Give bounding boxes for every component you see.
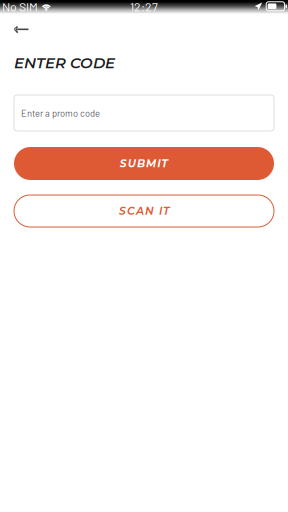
- button[interactable]: Back: [0, 14, 46, 46]
- staticText: Enter a promo code: [21, 107, 100, 119]
- staticText: ENTER CODE: [14, 54, 115, 72]
- button[interactable]: S: [0, 195, 288, 227]
- staticText: S: [119, 204, 126, 217]
- staticText: A: [136, 204, 144, 217]
- button[interactable]: S: [0, 147, 288, 180]
- staticText: U: [128, 157, 136, 170]
- staticText: I: [157, 157, 160, 170]
- staticText: No SIM: [2, 0, 38, 14]
- staticText: I: [159, 204, 162, 217]
- staticText: B: [137, 157, 145, 170]
- staticText: N: [145, 204, 154, 217]
- staticText: C: [127, 204, 135, 217]
- staticText: M: [146, 157, 156, 170]
- button[interactable]: Enter a promo code: [0, 95, 288, 131]
- staticText: S: [120, 157, 127, 170]
- staticText: T: [163, 204, 169, 217]
- staticText: 12:27: [130, 0, 158, 14]
- staticText: T: [161, 157, 168, 170]
